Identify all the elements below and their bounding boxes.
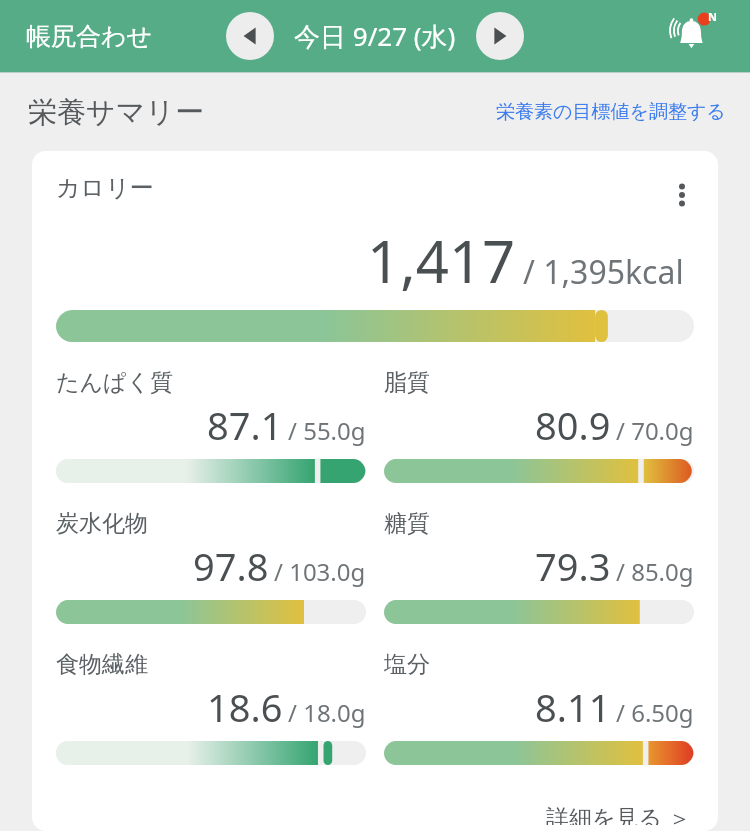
button[interactable]: More options — [660, 173, 704, 217]
staticText: 18.6 — [207, 681, 283, 733]
staticText: 97.8 — [193, 540, 269, 592]
staticText: 87.1 — [207, 399, 283, 451]
staticText: / 70.0g — [616, 414, 694, 447]
staticText: / 103.0g — [274, 555, 366, 588]
staticText: 80.9 — [535, 399, 611, 451]
button[interactable]: Notifications — [664, 7, 722, 65]
button[interactable]: 栄養素の目標値を調整する — [488, 94, 734, 130]
staticText: / 55.0g — [288, 414, 366, 447]
button[interactable]: 詳細を見る ＞ — [538, 795, 700, 831]
staticText: / 18.0g — [288, 696, 366, 729]
staticText: 塩分 — [384, 650, 430, 679]
staticText: 1,417 — [367, 221, 516, 300]
button[interactable]: 糖質 — [384, 509, 694, 624]
button[interactable]: Next day — [476, 12, 524, 60]
staticText: 糖質 — [384, 509, 430, 538]
staticText: 79.3 — [535, 540, 611, 592]
staticText: たんぱく質 — [56, 368, 174, 397]
staticText: 炭水化物 — [56, 509, 148, 538]
staticText: 帳尻合わせ — [26, 21, 153, 52]
staticText: N — [708, 9, 717, 23]
button[interactable]: たんぱく質 — [56, 368, 366, 483]
button[interactable]: Previous day — [226, 12, 274, 60]
staticText: カロリー — [56, 173, 154, 203]
staticText: / 6.50g — [616, 696, 694, 729]
button[interactable]: 食物繊維 — [56, 650, 366, 765]
staticText: 詳細を見る ＞ — [546, 801, 692, 825]
button[interactable]: 脂質 — [384, 368, 694, 483]
staticText: 脂質 — [384, 368, 430, 397]
button[interactable]: 炭水化物 — [56, 509, 366, 624]
staticText: 栄養素の目標値を調整する — [496, 100, 726, 124]
staticText: / 1,395kcal — [523, 250, 684, 294]
button[interactable]: 塩分 — [384, 650, 694, 765]
staticText: / 85.0g — [616, 555, 694, 588]
staticText: 今日 9/27 (水) — [294, 18, 456, 54]
staticText: 栄養サマリー — [28, 94, 205, 131]
staticText: 食物繊維 — [56, 650, 148, 679]
staticText: 8.11 — [535, 681, 611, 733]
